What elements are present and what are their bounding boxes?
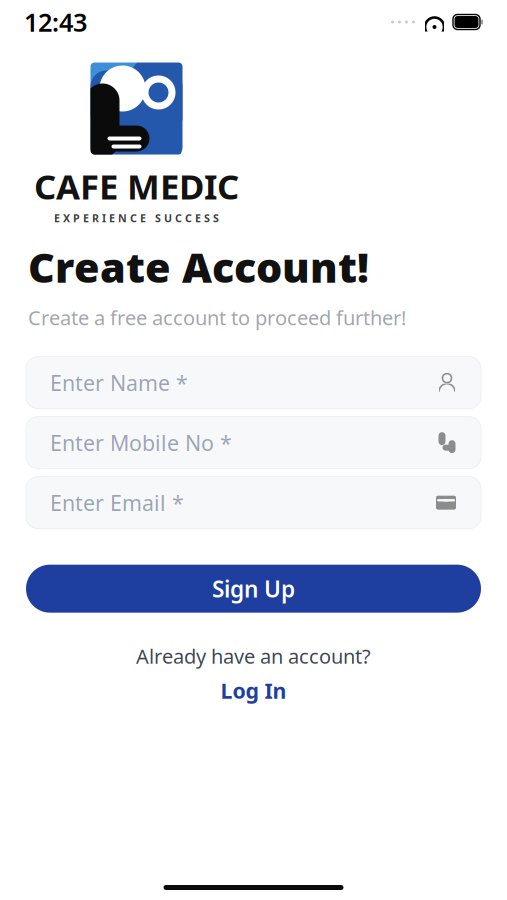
staticText: Create Account! <box>28 239 369 294</box>
staticText: Enter Name * <box>50 368 188 397</box>
staticText: Enter Mobile No * <box>50 428 232 457</box>
staticText: 12:43 <box>24 5 87 39</box>
staticText: Already have an account? <box>136 643 371 669</box>
button[interactable]: Enter Email * <box>26 477 481 529</box>
staticText: Sign Up <box>212 574 295 604</box>
button[interactable]: Enter Name * <box>26 357 481 409</box>
button[interactable]: Log In <box>212 674 294 706</box>
staticText: Log In <box>220 676 286 704</box>
staticText: Enter Email * <box>50 488 184 517</box>
button[interactable]: Enter Mobile No * <box>26 417 481 469</box>
staticText: E X P E R I E N C E S U C C E S S <box>54 211 219 225</box>
staticText: Create a free account to proceed further… <box>28 304 406 331</box>
button[interactable]: Sign Up <box>26 565 481 613</box>
staticText: CAFE MEDIC <box>34 163 239 209</box>
